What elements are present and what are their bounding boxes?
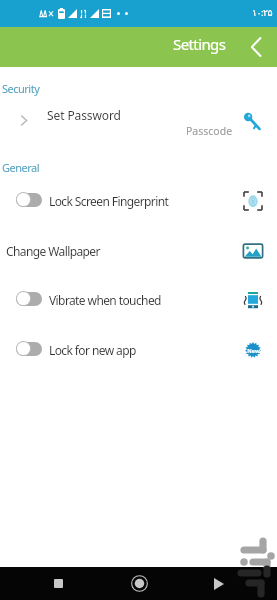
staticText: Vibrate when touched xyxy=(49,292,161,308)
button[interactable]: Lock Screen Fingerprint xyxy=(0,176,277,224)
button[interactable]: Vibrate when touched xyxy=(0,275,277,323)
button[interactable]: Home xyxy=(117,567,161,600)
staticText: Lock Screen Fingerprint xyxy=(49,193,169,209)
staticText: Lock for new app xyxy=(49,342,136,358)
staticText: Security xyxy=(2,81,40,96)
staticText: ۱۰:۲۵ xyxy=(252,6,272,19)
button[interactable]: Change Wallpaper xyxy=(0,226,277,274)
staticText: Set Password xyxy=(47,107,121,123)
staticText: General xyxy=(2,160,40,175)
button[interactable]: Back xyxy=(239,30,273,64)
button[interactable]: Recents xyxy=(36,567,80,600)
button[interactable]: Lock for new app xyxy=(0,325,277,373)
button[interactable]: Set Password xyxy=(0,100,277,140)
staticText: Change Wallpaper xyxy=(6,243,100,259)
staticText: New xyxy=(247,347,260,354)
staticText: Settings xyxy=(173,34,226,54)
button[interactable]: Back xyxy=(197,567,241,600)
staticText: Passcode xyxy=(186,124,233,138)
